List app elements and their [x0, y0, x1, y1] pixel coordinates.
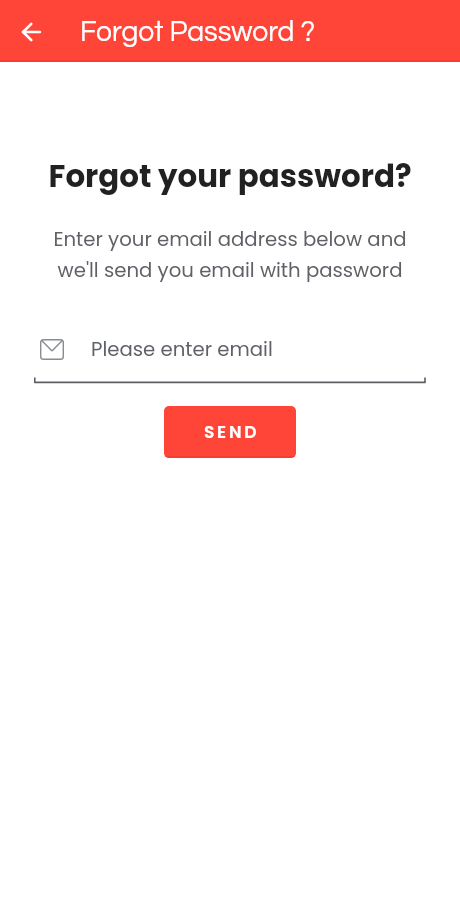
- staticText: Enter your email address below and we'll…: [0, 225, 460, 284]
- button[interactable]: Please enter email: [34, 330, 426, 382]
- staticText: Forgot your password?: [0, 155, 460, 198]
- staticText: Please enter email: [91, 335, 273, 363]
- staticText: Forgot Password ?: [80, 18, 315, 47]
- button[interactable]: SEND: [164, 406, 296, 458]
- staticText: SEND: [204, 420, 260, 444]
- button[interactable]: Back: [10, 10, 53, 53]
